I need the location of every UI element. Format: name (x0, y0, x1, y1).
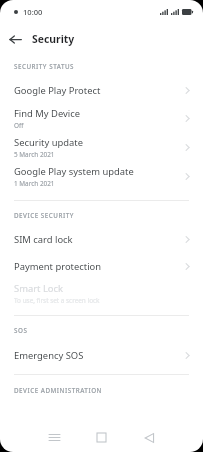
staticText: DEVICE SECURITY (14, 211, 74, 220)
staticText: Google Play Protect (14, 84, 101, 97)
staticText: Security (32, 32, 75, 46)
staticText: Emergency SOS (14, 349, 84, 362)
button[interactable]: Payment protection (0, 256, 203, 276)
staticText: 10:00 (23, 7, 43, 17)
staticText: Smart Lock (14, 282, 64, 295)
staticText: Find My Device (14, 107, 81, 120)
staticText: SIM card lock (14, 233, 73, 246)
button[interactable]: Home (88, 425, 114, 450)
staticText: 1 March 2021 (14, 179, 55, 188)
button[interactable]: Security update (0, 135, 203, 160)
staticText: Payment protection (14, 260, 102, 273)
staticText: Off (14, 121, 24, 130)
staticText: SOS (14, 326, 28, 335)
button[interactable]: Google Play Protect (0, 79, 203, 101)
staticText: SECURITY STATUS (14, 62, 75, 71)
button[interactable]: Recent apps (41, 425, 67, 450)
staticText: Google Play system update (14, 165, 134, 178)
staticText: 5 March 2021 (14, 150, 55, 159)
staticText: To use, first set a screen lock (14, 296, 100, 305)
button[interactable]: Find My Device (0, 106, 203, 131)
button[interactable]: Emergency SOS (0, 345, 203, 365)
button: Smart Lock (0, 281, 203, 306)
button[interactable]: Navigate up (0, 24, 30, 54)
button[interactable]: Google Play system update (0, 164, 203, 189)
staticText: Security update (14, 136, 83, 149)
staticText: DEVICE ADMINISTRATION (14, 386, 102, 395)
button[interactable]: SIM card lock (0, 229, 203, 249)
button[interactable]: Back (136, 425, 162, 450)
